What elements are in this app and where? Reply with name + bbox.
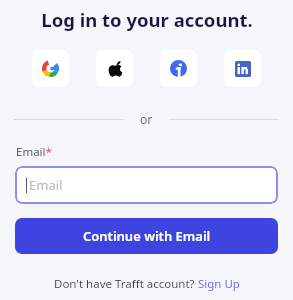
staticText: or — [140, 111, 153, 127]
button[interactable]: Sign in with Apple — [96, 50, 133, 87]
staticText: Email* — [16, 144, 52, 160]
button[interactable]: Sign in with Facebook — [160, 50, 197, 87]
button[interactable]: Continue with Email — [15, 218, 278, 254]
staticText: Don't have Trafft account? — [54, 276, 198, 292]
button[interactable]: Sign in with LinkedIn — [224, 50, 261, 87]
staticText: Log in to your account. — [41, 7, 253, 32]
staticText: Continue with Email — [83, 227, 211, 245]
button[interactable]: Sign Up — [198, 276, 240, 292]
staticText: Email — [29, 176, 63, 194]
staticText: Sign Up — [198, 276, 240, 292]
button[interactable]: Sign in with Google — [32, 50, 69, 87]
button[interactable]: Email — [15, 166, 278, 204]
